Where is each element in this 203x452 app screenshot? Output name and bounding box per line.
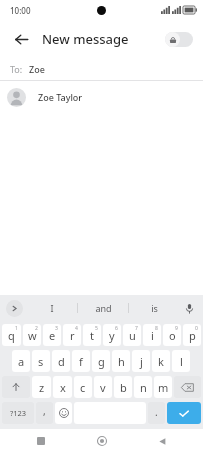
button[interactable]: Done [167,402,201,424]
button[interactable]: More suggestions [6,300,23,317]
staticText: y [109,328,115,343]
staticText: 6 [115,325,118,332]
staticText: 2 [35,325,38,332]
button[interactable]: l [172,350,190,372]
button[interactable]: i [143,324,161,346]
button[interactable]: To: [0,58,203,80]
staticText: j [140,354,143,369]
button[interactable]: x [53,376,72,398]
button[interactable]: f [72,350,90,372]
button[interactable]: Home [91,430,113,452]
staticText: 4 [75,325,78,332]
button[interactable]: n [134,376,152,398]
staticText: u [129,328,136,343]
staticText: p [189,328,196,343]
button[interactable]: Back [6,24,36,54]
staticText: Zoe [29,63,45,75]
button[interactable]: d [52,350,70,372]
button[interactable]: Shift [2,376,30,398]
staticText: 3 [55,325,58,332]
button[interactable]: Emoji [55,402,72,424]
staticText: . [155,405,158,419]
staticText: l [180,354,183,369]
staticText: 9 [175,325,178,332]
button[interactable]: r [63,324,81,346]
button[interactable]: s [32,350,50,372]
button[interactable]: z [32,376,51,398]
staticText: 8 [155,325,158,332]
button[interactable]: e [43,324,61,346]
button[interactable]: k [152,350,170,372]
staticText: ?123 [10,408,27,418]
button[interactable]: y [103,324,121,346]
staticText: i [151,328,154,343]
button[interactable]: m [154,376,172,398]
button[interactable]: Toggle secure message [165,32,193,47]
button[interactable]: I [26,295,77,321]
button[interactable]: p [183,324,201,346]
staticText: a [18,354,25,369]
staticText: n [140,380,147,395]
button[interactable]: ?123 [2,402,34,424]
button[interactable]: , [36,402,53,424]
staticText: f [79,354,83,369]
button[interactable]: a [12,350,30,372]
staticText: k [158,354,164,369]
button[interactable]: Zoe Taylor [0,81,203,113]
staticText: 7 [135,325,138,332]
staticText: o [169,328,176,343]
staticText: I [50,302,54,314]
button[interactable]: w [23,324,41,346]
staticText: q [8,328,15,343]
staticText: z [39,380,45,395]
button[interactable]: Backspace [174,376,201,398]
staticText: b [120,380,127,395]
staticText: To: [10,63,23,75]
staticText: x [60,380,66,395]
staticText: h [118,354,125,369]
button[interactable]: t [83,324,101,346]
button[interactable]: u [123,324,141,346]
button[interactable]: Recents [30,430,52,452]
button[interactable]: v [94,376,112,398]
button[interactable]: o [163,324,181,346]
staticText: 1 [15,325,18,332]
button[interactable]: Back [151,430,173,452]
staticText: r [70,328,75,343]
staticText: c [80,380,86,395]
button[interactable]: g [92,350,110,372]
staticText: 10:00 [10,5,31,16]
staticText: w [28,328,37,343]
staticText: 0 [195,325,198,332]
staticText: is [151,302,158,314]
button[interactable]: Voice input [180,299,198,317]
staticText: v [100,380,106,395]
staticText: e [49,328,56,343]
button[interactable]: b [114,376,132,398]
button[interactable]: c [74,376,92,398]
staticText: Zoe Taylor [38,91,83,103]
staticText: d [58,354,65,369]
staticText: s [38,354,44,369]
staticText: m [158,380,169,395]
button[interactable]: and [78,295,128,321]
staticText: New message [42,30,129,48]
staticText: 5 [95,325,98,332]
button[interactable]: . [148,402,165,424]
button[interactable]: is [129,295,179,321]
button[interactable]: q [2,324,21,346]
staticText: g [98,354,105,369]
staticText: , [43,404,46,418]
staticText: and [95,302,112,314]
button[interactable]: h [112,350,130,372]
staticText: t [90,328,94,343]
button[interactable]: j [132,350,150,372]
